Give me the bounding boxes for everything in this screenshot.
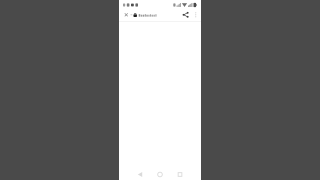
button[interactable]: Back bbox=[130, 166, 150, 180]
button[interactable]: Recent apps bbox=[170, 166, 190, 180]
button[interactable]: Home bbox=[150, 166, 170, 180]
button[interactable]: More options bbox=[192, 9, 199, 20]
button[interactable]: Close bbox=[122, 9, 130, 20]
button[interactable]: Share bbox=[181, 9, 190, 20]
